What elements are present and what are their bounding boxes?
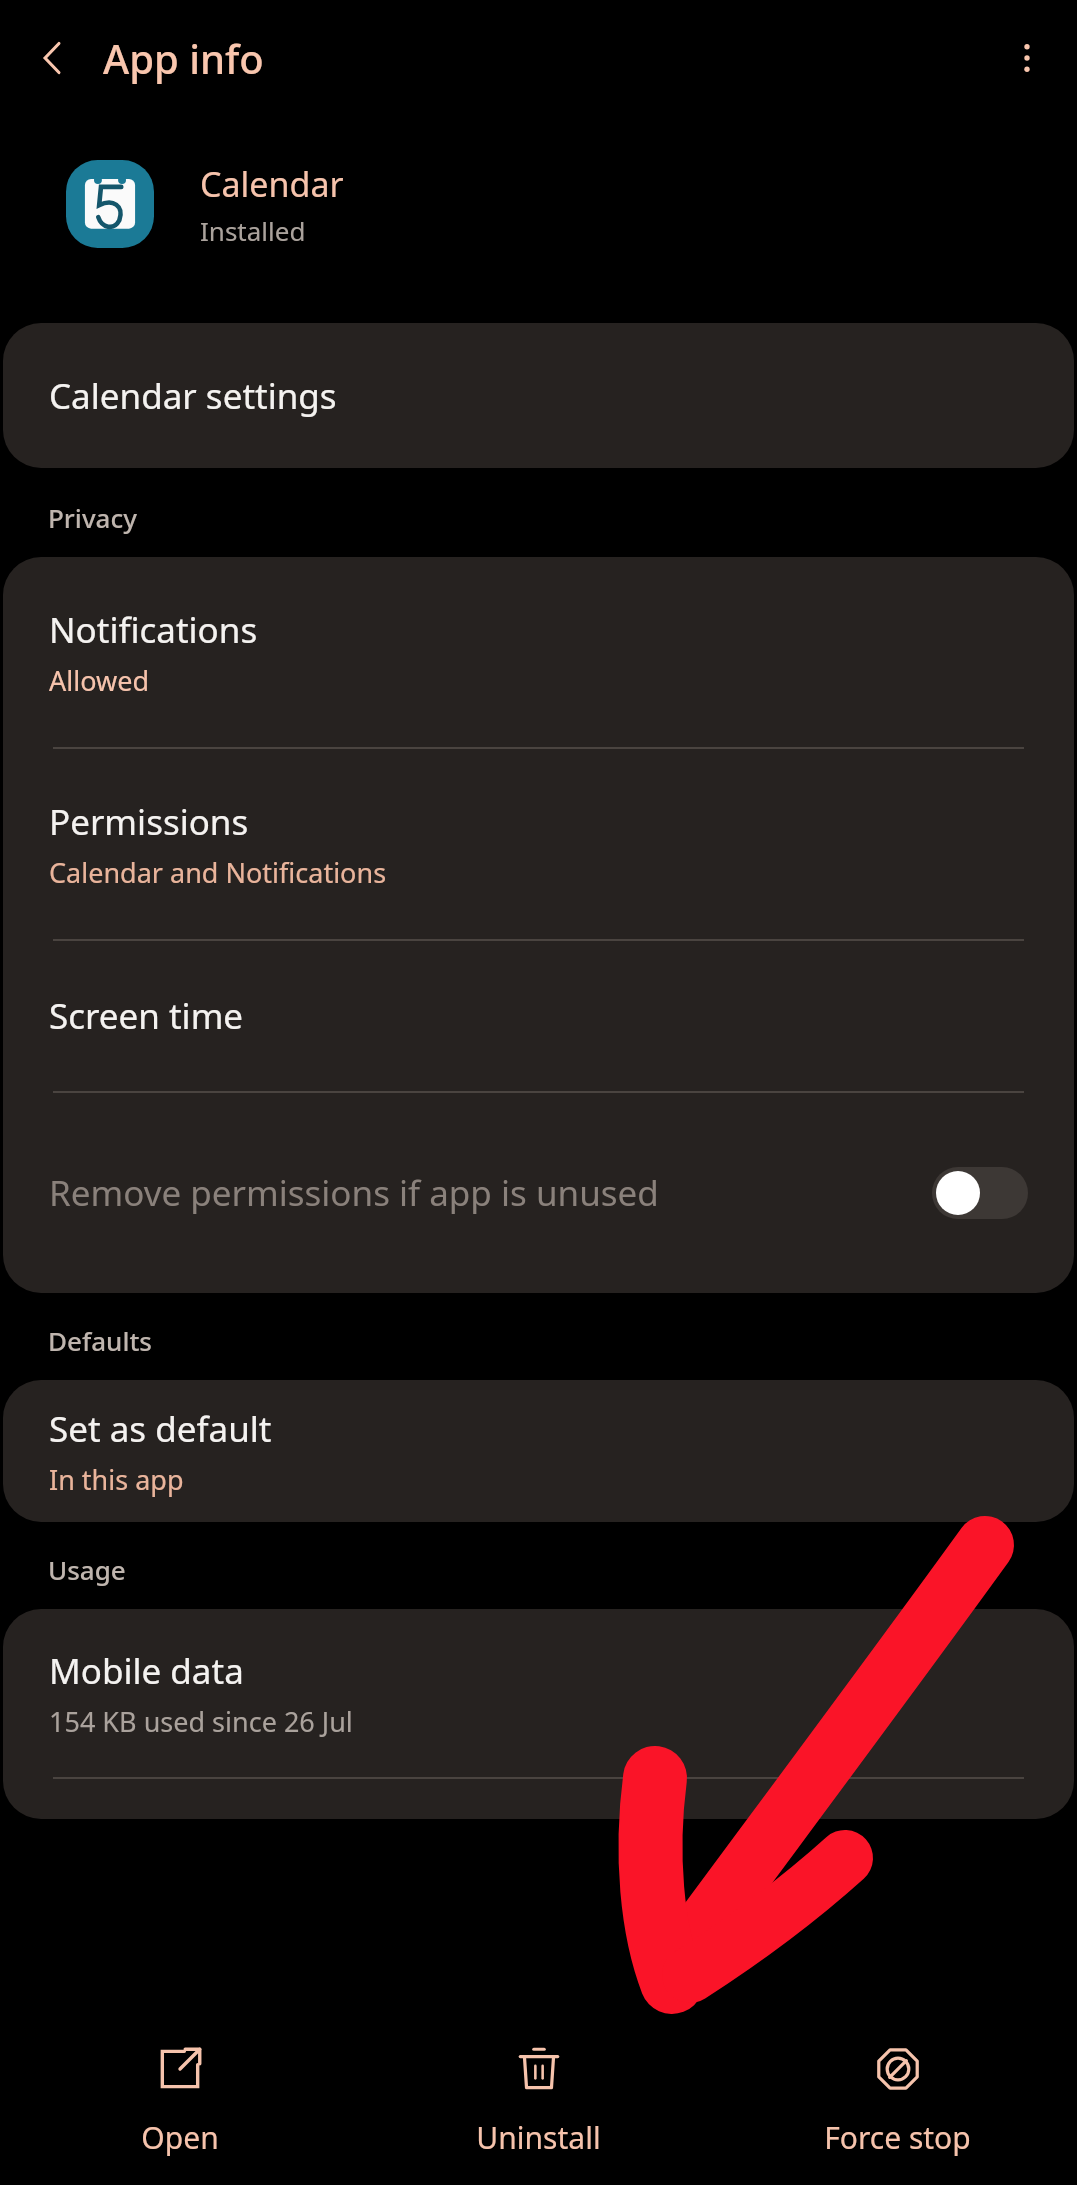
button[interactable]: Calendar settings [3,323,1074,468]
staticText: Permissions [49,798,249,846]
button[interactable]: Force stop [718,2015,1077,2185]
button[interactable]: Remove permissions toggle [932,1167,1028,1219]
staticText: In this app [49,1461,184,1498]
staticText: Uninstall [476,2117,601,2158]
staticText: Calendar settings [49,372,337,420]
button[interactable]: Notifications [3,557,1074,747]
button[interactable]: Set as default [3,1380,1074,1522]
staticText: Screen time [49,992,244,1040]
button[interactable]: Mobile data [3,1609,1074,1777]
button[interactable]: More options [999,30,1055,86]
button[interactable]: Screen time [3,941,1074,1091]
button[interactable]: Uninstall [359,2015,718,2185]
staticText: Defaults [48,1323,153,1358]
staticText: 154 KB used since 26 Jul [49,1703,353,1740]
button[interactable]: Open [0,2015,359,2185]
staticText: Allowed [49,662,150,699]
button[interactable]: Permissions [3,749,1074,939]
staticText: Notifications [49,606,258,654]
button[interactable]: Remove permissions if app is unused [3,1093,1074,1293]
staticText: Calendar and Notifications [49,854,387,891]
staticText: Force stop [824,2117,971,2158]
staticText: Set as default [49,1405,272,1453]
staticText: Mobile data [49,1647,244,1695]
button[interactable]: Back [24,30,80,86]
staticText: Installed [200,213,306,248]
button[interactable]: Calendar [0,115,1077,293]
staticText: App info [103,31,264,85]
staticText: Remove permissions if app is unused [49,1169,892,1217]
staticText: Usage [48,1552,126,1587]
staticText: Privacy [48,500,137,535]
staticText: Open [141,2117,219,2158]
staticText: Calendar [200,161,344,207]
